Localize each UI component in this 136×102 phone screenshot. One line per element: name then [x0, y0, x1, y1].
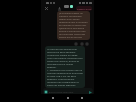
staticText: Passer à Pro [77, 7, 92, 10]
button[interactable]: Model [64, 5, 69, 8]
button[interactable]: Edit [79, 41, 84, 46]
button[interactable]: Recents [79, 95, 85, 101]
staticText: Le transfert de données par câble entre … [47, 48, 83, 86]
button[interactable]: Assistant [70, 5, 73, 8]
button[interactable]: Add attachment [43, 88, 93, 95]
staticText: Je souhaite réaliser un transfert de don… [59, 12, 88, 39]
button[interactable]: Home [65, 95, 71, 101]
button[interactable]: Le transfert de données par câble entre … [45, 46, 85, 88]
other: Add attachment [44, 90, 48, 94]
other: Send [88, 90, 92, 94]
button[interactable]: Retry [84, 41, 89, 46]
button[interactable]: Copy [73, 41, 78, 46]
button[interactable]: Passer à Pro [76, 6, 92, 11]
button[interactable]: Back [50, 95, 56, 101]
button[interactable]: Je souhaite réaliser un transfert de don… [57, 11, 90, 40]
button[interactable]: Share [56, 5, 62, 11]
button[interactable]: Close [43, 5, 49, 11]
staticText: Écrire votre question [49, 90, 74, 93]
